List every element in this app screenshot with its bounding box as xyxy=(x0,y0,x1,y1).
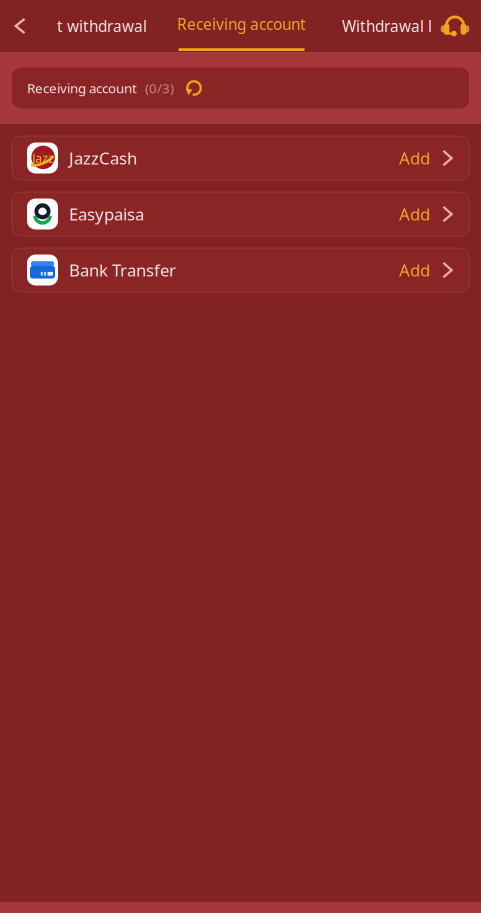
staticText: (0/3) xyxy=(145,79,174,97)
staticText: Receiving account xyxy=(27,79,137,97)
staticText: Jazz xyxy=(32,150,54,166)
button[interactable]: Jazz xyxy=(12,136,469,180)
staticText: Withdrawal l xyxy=(342,16,432,36)
button[interactable]: Easypaisa xyxy=(12,192,469,236)
button[interactable]: Bank Transfer xyxy=(12,248,469,292)
button[interactable]: Back xyxy=(0,0,40,52)
staticText: Add xyxy=(399,147,430,169)
staticText: Receiving account xyxy=(177,14,306,35)
staticText: JazzCash xyxy=(69,147,137,169)
staticText: Add xyxy=(399,259,430,281)
staticText: Easypaisa xyxy=(69,203,144,225)
staticText: Bank Transfer xyxy=(69,259,176,281)
staticText: t withdrawal xyxy=(57,16,147,36)
button[interactable]: t withdrawal xyxy=(40,0,162,52)
button[interactable]: Withdrawal l xyxy=(326,0,446,52)
button[interactable]: Receiving account xyxy=(162,0,326,52)
button[interactable]: Customer support xyxy=(429,0,481,52)
staticText: Add xyxy=(399,203,430,225)
